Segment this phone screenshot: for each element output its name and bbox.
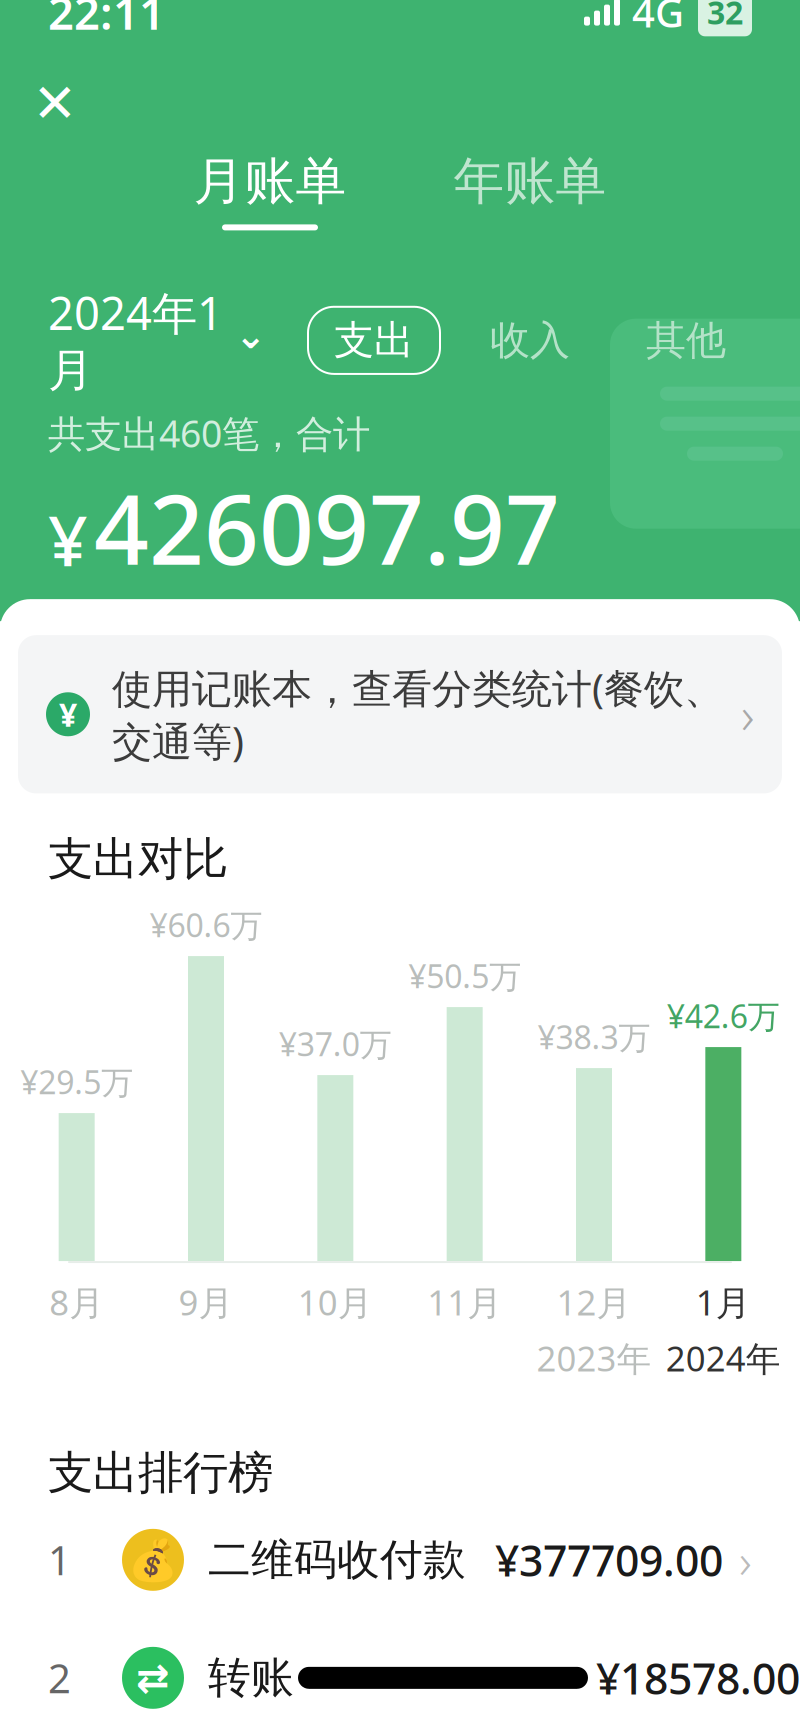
staticText: 支出对比	[48, 831, 228, 887]
staticText: 其他	[646, 316, 726, 365]
button[interactable]: 其他	[620, 307, 752, 374]
staticText: 使用记账本，查看分类统计(餐饮、交通等)	[112, 661, 724, 767]
staticText: 10月	[298, 1279, 373, 1325]
staticText: ¥50.5万	[408, 955, 521, 997]
staticText: 2024年1月	[48, 282, 223, 398]
staticText: 收入	[490, 316, 570, 365]
staticText: ›	[741, 681, 754, 748]
staticText: ⌄	[235, 314, 266, 357]
staticText: 4G	[632, 0, 684, 39]
staticText: ¥37.0万	[279, 1023, 392, 1065]
staticText: 💰	[128, 1537, 178, 1583]
staticText: 月账单	[193, 150, 346, 212]
button[interactable]: 支出	[308, 307, 440, 374]
staticText: 22:11	[48, 0, 165, 42]
staticText: 32	[707, 0, 743, 33]
button[interactable]: 1	[0, 1501, 800, 1619]
staticText: 支出排行榜	[48, 1445, 273, 1501]
button[interactable]: 月账单	[180, 150, 360, 230]
staticText: 2024年	[666, 1335, 781, 1381]
staticText: ¥42.6万	[667, 995, 780, 1037]
staticText: 共支出460笔，合计	[48, 408, 370, 458]
staticText: 426097.97	[94, 464, 560, 591]
staticText: ¥29.5万	[20, 1061, 133, 1103]
staticText: ¥	[48, 493, 88, 585]
staticText: 年账单	[453, 150, 606, 212]
button[interactable]: 2	[0, 1619, 800, 1733]
staticText: 2	[48, 1651, 71, 1704]
button[interactable]: 收入	[464, 307, 596, 374]
staticText: ¥60.6万	[149, 904, 262, 946]
staticText: 2023年	[536, 1335, 651, 1381]
staticText: ¥377709.00	[495, 1531, 723, 1588]
staticText: ⇄	[136, 1655, 170, 1700]
button[interactable]: 年账单	[440, 150, 620, 230]
button[interactable]: 2024年1月	[48, 272, 266, 408]
staticText: ›	[739, 1528, 752, 1592]
button[interactable]: 关闭	[22, 70, 88, 136]
button[interactable]: ¥	[18, 635, 782, 793]
staticText: 12月	[556, 1279, 631, 1325]
staticText: 9月	[178, 1279, 233, 1325]
staticText: ¥18578.00	[596, 1649, 800, 1706]
staticText: 1	[48, 1533, 71, 1586]
staticText: 11月	[427, 1279, 502, 1325]
staticText: ¥	[59, 693, 77, 735]
staticText: ✕	[32, 73, 77, 133]
staticText: 8月	[49, 1279, 104, 1325]
staticText: 支出	[334, 316, 414, 365]
staticText: 二维码收付款	[208, 1534, 466, 1586]
staticText: 1月	[696, 1279, 751, 1325]
staticText: 转账	[208, 1652, 294, 1704]
staticText: ¥38.3万	[537, 1016, 650, 1058]
